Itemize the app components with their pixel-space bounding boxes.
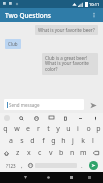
button[interactable]: q	[0, 123, 11, 135]
button[interactable]: n	[67, 147, 78, 159]
staticText: Two Questions	[5, 11, 51, 20]
button[interactable]: a	[5, 135, 16, 147]
button[interactable]: c	[34, 147, 45, 159]
button[interactable]: h	[58, 135, 68, 147]
staticText: k	[81, 136, 85, 146]
button[interactable]: Back	[19, 172, 32, 183]
staticText: o	[86, 124, 91, 134]
button[interactable]: Shift	[0, 147, 13, 159]
staticText: i	[77, 124, 79, 134]
button[interactable]: Google	[4, 115, 10, 121]
button[interactable]: Voice	[91, 114, 99, 122]
staticText: .	[81, 162, 83, 170]
button[interactable]: Search	[17, 114, 25, 122]
button[interactable]: l	[88, 135, 98, 147]
button[interactable]: Send	[86, 159, 100, 172]
staticText: q	[3, 124, 8, 134]
staticText: 10:11	[89, 2, 100, 7]
button[interactable]: Recents	[65, 172, 78, 183]
staticText: y	[56, 124, 60, 134]
button[interactable]: Send	[87, 99, 99, 111]
button[interactable]: g	[48, 135, 58, 147]
staticText: p	[96, 124, 101, 134]
button[interactable]: Club	[5, 39, 21, 49]
staticText: l	[92, 136, 94, 146]
button[interactable]: m	[78, 147, 89, 159]
button[interactable]: d	[27, 135, 38, 147]
button[interactable]: Emoji	[26, 159, 35, 172]
button[interactable]: More options	[88, 9, 100, 21]
button[interactable]: j	[68, 135, 78, 147]
staticText: w	[14, 124, 20, 134]
staticText: e	[26, 124, 30, 134]
staticText: Send message	[9, 102, 40, 108]
button[interactable]: e	[22, 123, 33, 135]
staticText: n	[70, 148, 75, 158]
staticText: Club is a great beer! What is your favor…	[45, 55, 95, 73]
staticText: d	[30, 136, 35, 146]
staticText: s	[20, 136, 24, 146]
button[interactable]: y	[53, 123, 63, 135]
staticText: f	[42, 136, 45, 146]
button[interactable]: u	[63, 123, 73, 135]
staticText: g	[51, 136, 56, 146]
staticText: m	[80, 148, 87, 158]
button[interactable]: p	[93, 123, 103, 135]
button[interactable]: b	[56, 147, 67, 159]
staticText: b	[59, 148, 64, 158]
staticText: v	[49, 148, 53, 158]
staticText: j	[72, 136, 74, 146]
staticText: r	[37, 124, 40, 134]
button[interactable]: x	[23, 147, 34, 159]
staticText: Club	[8, 41, 18, 47]
button[interactable]: .	[77, 159, 86, 172]
button[interactable]: ?123	[3, 159, 18, 172]
staticText: c	[38, 148, 42, 158]
staticText: ?123	[6, 163, 16, 169]
button[interactable]: i	[73, 123, 83, 135]
button[interactable]: o	[83, 123, 93, 135]
button[interactable]: k	[78, 135, 88, 147]
button[interactable]: Send message	[4, 99, 84, 110]
button[interactable]: z	[13, 147, 23, 159]
staticText: h	[61, 136, 66, 146]
button[interactable]: Keyboard	[83, 172, 96, 183]
button[interactable]: Club is a great beer! What is your favor…	[42, 53, 98, 75]
button[interactable]: What is your favorite beer?	[35, 25, 98, 35]
staticText: u	[66, 124, 71, 134]
button[interactable]: t	[43, 123, 53, 135]
button[interactable]: ,	[18, 159, 26, 172]
button[interactable]: r	[33, 123, 43, 135]
staticText: a	[9, 136, 13, 146]
staticText: What is your favorite beer?	[38, 27, 95, 33]
button[interactable]: Clipboard	[61, 114, 69, 122]
staticText: t	[47, 124, 50, 134]
button[interactable]: Emoji	[32, 114, 40, 122]
button[interactable]: v	[45, 147, 56, 159]
button[interactable]: GIF	[47, 114, 55, 122]
staticText: z	[16, 148, 20, 158]
button[interactable]: Home	[42, 172, 55, 183]
staticText: x	[27, 148, 31, 158]
button[interactable]: f	[38, 135, 48, 147]
button[interactable]: Backspace	[89, 147, 103, 159]
button[interactable]: w	[11, 123, 22, 135]
button[interactable]: s	[16, 135, 27, 147]
button[interactable]: Settings	[76, 114, 84, 122]
staticText: ,	[21, 162, 23, 170]
